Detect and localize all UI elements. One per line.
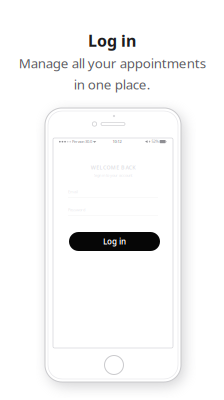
staticText: 10:12 xyxy=(112,139,121,144)
staticText: Manage all your appointments in one plac… xyxy=(18,54,205,93)
staticText: Sign in to your account xyxy=(94,173,132,178)
button[interactable]: Log in xyxy=(69,232,160,251)
staticText: Log in xyxy=(88,30,136,51)
staticText: 52% xyxy=(152,139,159,144)
staticText: Password xyxy=(68,207,85,212)
staticText: Email xyxy=(68,189,78,194)
staticText: Log in xyxy=(103,236,126,247)
staticText: WELCOME BACK xyxy=(91,164,135,171)
staticText: Регион 30.0 xyxy=(72,139,92,144)
